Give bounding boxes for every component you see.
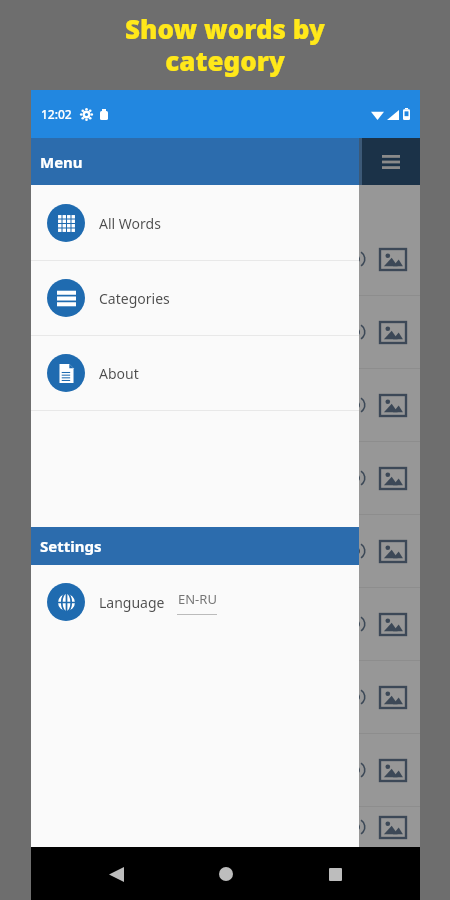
staticText: Show words by category [125, 11, 325, 79]
button[interactable]: Home [202, 850, 250, 898]
button[interactable]: Back [92, 850, 140, 898]
button[interactable] [31, 661, 420, 733]
button[interactable]: Recent apps [311, 850, 359, 898]
staticText: 12:02 [41, 106, 72, 122]
button[interactable] [31, 223, 420, 295]
button[interactable] [31, 734, 420, 806]
staticText: EN-RU [178, 590, 217, 608]
button[interactable]: Open navigation menu [362, 138, 420, 185]
button[interactable]: About [31, 336, 359, 410]
button[interactable] [31, 442, 420, 514]
staticText: Language [99, 593, 165, 612]
staticText: All Words [99, 214, 161, 233]
staticText: About [99, 364, 139, 383]
button[interactable] [31, 588, 420, 660]
button[interactable]: Categories [31, 261, 359, 335]
staticText: Settings [40, 536, 102, 556]
button[interactable]: Language [31, 565, 359, 639]
button[interactable]: All Words [31, 186, 359, 260]
button[interactable] [31, 515, 420, 587]
staticText: Menu [40, 152, 83, 172]
button[interactable] [31, 369, 420, 441]
button[interactable] [31, 296, 420, 368]
button[interactable] [31, 807, 420, 847]
staticText: Categories [99, 289, 170, 308]
